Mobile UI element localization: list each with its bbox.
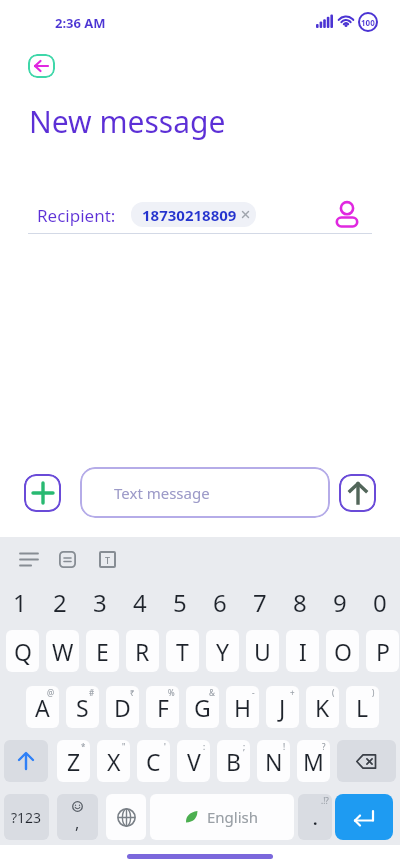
staticText: S [76,692,89,723]
button[interactable]: M [297,740,330,782]
button[interactable]: 8 [280,586,320,616]
staticText: ?123 [11,808,42,827]
staticText: 3 [93,586,107,616]
button[interactable]: F [146,686,179,728]
staticText: + [290,687,295,698]
button[interactable]: O [326,630,359,672]
staticText: English [207,807,259,827]
button[interactable]: 9 [320,586,360,616]
staticText: W [52,636,74,667]
staticText: Text message [114,483,210,503]
button[interactable]: L [346,686,379,728]
staticText: N [265,746,283,777]
button[interactable] [339,474,376,512]
button[interactable]: T [99,551,116,568]
button[interactable] [335,794,393,840]
button[interactable]: P [366,630,399,672]
staticText: K [315,692,330,723]
button[interactable]: 18730218809 [131,202,256,227]
staticText: 100 [361,17,375,28]
button[interactable] [336,201,358,228]
staticText: 2 [53,586,67,616]
button[interactable] [106,794,146,840]
button[interactable]: 3 [80,586,120,616]
button[interactable]: Q [6,630,39,672]
staticText: : [203,741,206,752]
button[interactable]: 0 [360,586,400,616]
staticText: ? [322,741,326,752]
button[interactable]: T [166,630,199,672]
button[interactable]: X [97,740,130,782]
button[interactable]: G [186,686,219,728]
staticText: 7 [253,586,267,616]
staticText: ' [164,741,166,752]
staticText: Recipient: [37,204,116,227]
button[interactable] [28,54,55,78]
staticText: Q [14,636,32,667]
staticText: Z [67,746,81,777]
staticText: X [107,746,121,777]
button[interactable]: 6 [200,586,240,616]
staticText: # [89,687,95,698]
staticText: I [299,636,307,667]
staticText: ( [332,687,335,698]
button[interactable]: 5 [160,586,200,616]
button[interactable] [20,552,38,567]
staticText: @ [47,687,55,698]
button[interactable]: Y [206,630,239,672]
button[interactable]: I [286,630,319,672]
button[interactable]: 1 [0,586,40,616]
staticText: 0 [373,586,387,616]
staticText: , [75,812,80,834]
staticText: 18730218809 [142,205,237,225]
staticText: ! [283,741,286,752]
button[interactable] [24,474,61,512]
staticText: New message [29,101,226,142]
staticText: " [122,741,126,752]
button[interactable]: 4 [120,586,160,616]
staticText: % [168,687,175,698]
staticText: C [146,746,161,777]
button[interactable]: .!? [298,794,332,840]
staticText: F [157,692,169,723]
staticText: . [313,808,318,830]
button[interactable]: S [66,686,99,728]
staticText: H [234,692,252,723]
button[interactable]: J [266,686,299,728]
button[interactable]: R [126,630,159,672]
button[interactable]: 7 [240,586,280,616]
staticText: G [194,692,211,723]
button[interactable]: W [46,630,79,672]
button[interactable] [337,740,396,782]
staticText: - [252,687,255,698]
button[interactable]: 2 [40,586,80,616]
button[interactable] [59,551,76,568]
button[interactable]: H [226,686,259,728]
button[interactable]: Text message [80,467,330,518]
button[interactable]: English [150,794,294,840]
button[interactable]: C [137,740,170,782]
button[interactable]: Z [57,740,90,782]
staticText: V [187,746,201,777]
button[interactable]: A [26,686,59,728]
button[interactable]: B [217,740,250,782]
button[interactable]: D [106,686,139,728]
staticText: B [226,746,241,777]
staticText: Y [216,636,230,667]
staticText: P [376,636,390,667]
button[interactable]: V [177,740,210,782]
button[interactable]: N [257,740,290,782]
staticText: 1 [13,586,27,616]
button[interactable] [4,740,48,782]
staticText: T [176,636,189,667]
button[interactable]: U [246,630,279,672]
button[interactable]: ?123 [4,794,49,840]
staticText: 6 [213,586,227,616]
button[interactable]: , [57,794,98,840]
button[interactable]: K [306,686,339,728]
staticText: ; [243,741,246,752]
staticText: * [81,741,86,752]
button[interactable]: E [86,630,119,672]
staticText: 8 [293,586,307,616]
staticText: D [114,692,131,723]
